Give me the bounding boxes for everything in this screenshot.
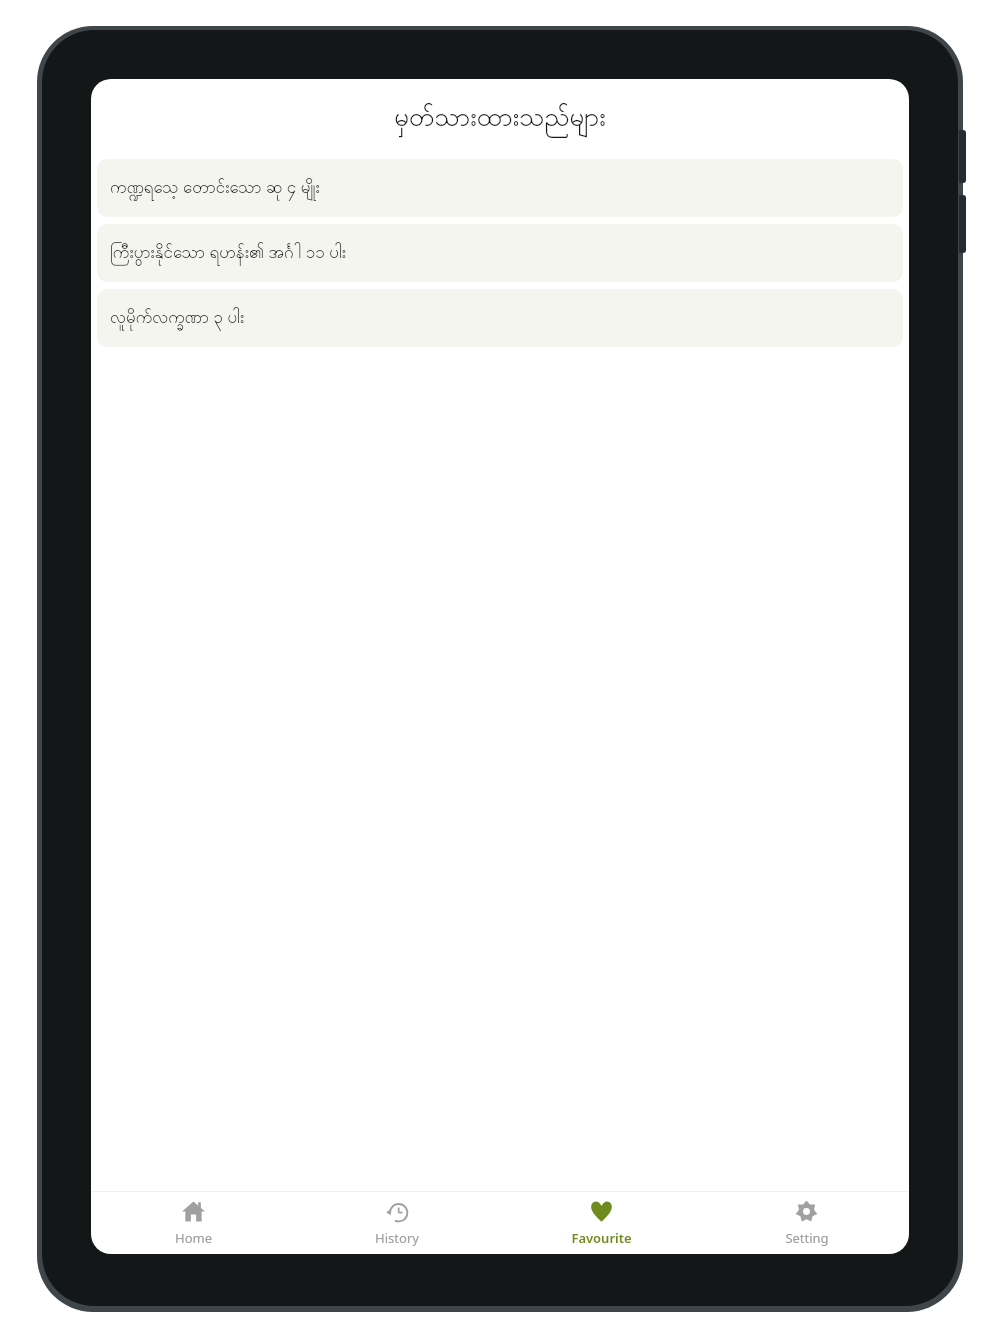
other: Home	[182, 1200, 205, 1223]
staticText: ကဏ္ဍရသေ့ တောင်းသော ဆု ၄ မျိုး	[110, 175, 320, 201]
button[interactable]: History	[295, 1192, 499, 1254]
other: History	[386, 1200, 409, 1223]
staticText: History	[375, 1229, 419, 1247]
button[interactable]: ကဏ္ဍရသေ့ တောင်းသော ဆု ၄ မျိုး	[97, 159, 903, 217]
staticText: လူမိုက်လက္ခဏာ ၃ ပါး	[110, 305, 245, 331]
button[interactable]: Favourite	[499, 1192, 704, 1254]
button[interactable]: Setting	[704, 1192, 909, 1254]
button[interactable]: လူမိုက်လက္ခဏာ ၃ ပါး	[97, 289, 903, 347]
other: Setting	[795, 1200, 818, 1223]
staticText: Home	[175, 1229, 212, 1247]
button[interactable]: Home	[91, 1192, 295, 1254]
staticText: ကြီးပွားနိုင်သော ရဟန်း၏ အင်္ဂါ ၁၁ ပါး	[110, 240, 347, 266]
staticText: Setting	[785, 1229, 829, 1247]
staticText: မှတ်သားထားသည်များ	[394, 100, 606, 138]
button[interactable]: ကြီးပွားနိုင်သော ရဟန်း၏ အင်္ဂါ ၁၁ ပါး	[97, 224, 903, 282]
staticText: Favourite	[571, 1229, 632, 1247]
other: Favourite	[590, 1200, 613, 1223]
